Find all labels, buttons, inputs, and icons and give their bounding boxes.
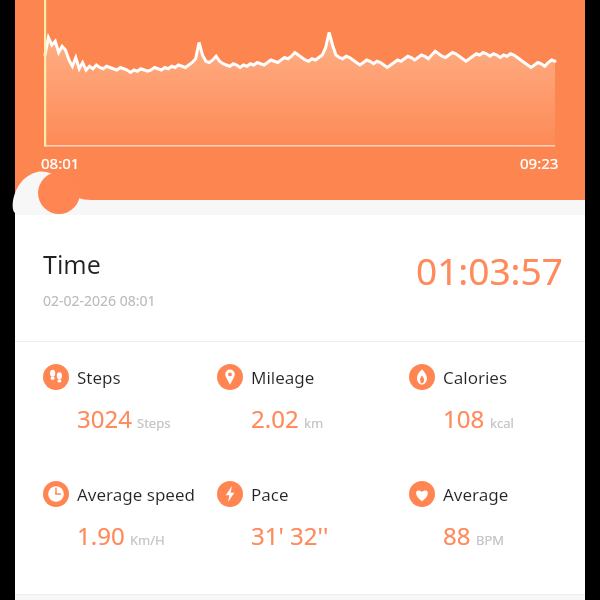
staticText: 02-02-2026 08:01 (43, 291, 156, 310)
button[interactable]: Average (395, 481, 585, 552)
staticText: 2.02 (251, 402, 299, 435)
staticText: BPM (476, 531, 505, 549)
staticText: Pace (251, 483, 289, 506)
staticText: 1.90 (77, 519, 125, 552)
staticText: 108 (443, 402, 485, 435)
staticText: Time (43, 247, 101, 281)
button[interactable]: Mileage (205, 364, 395, 435)
button[interactable]: Workout marker (38, 172, 80, 214)
staticText: Mileage (251, 366, 315, 389)
button[interactable]: Calories (395, 364, 585, 435)
staticText: 09:23 (520, 153, 559, 173)
staticText: 01:03:57 (416, 245, 563, 295)
staticText: 31' 32'' (251, 519, 329, 552)
staticText: Average speed (77, 483, 195, 506)
staticText: Steps (77, 366, 121, 389)
staticText: Calories (443, 366, 508, 389)
staticText: Steps (137, 414, 171, 432)
staticText: km (304, 414, 324, 432)
button[interactable]: Average speed (15, 481, 205, 552)
staticText: 08:01 (41, 153, 80, 173)
button[interactable]: Steps (15, 364, 205, 435)
button[interactable]: Pace (205, 481, 395, 552)
button[interactable]: Time (15, 215, 585, 341)
staticText: 3024 (77, 402, 132, 435)
staticText: kcal (490, 414, 514, 432)
staticText: Average (443, 483, 509, 506)
staticText: Km/H (130, 531, 165, 549)
staticText: 88 (443, 519, 471, 552)
